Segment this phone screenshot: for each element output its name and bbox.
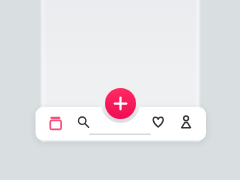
button[interactable] <box>146 110 170 134</box>
button[interactable] <box>104 87 137 120</box>
button[interactable] <box>43 111 67 135</box>
button[interactable] <box>70 109 94 133</box>
button[interactable] <box>174 110 198 134</box>
